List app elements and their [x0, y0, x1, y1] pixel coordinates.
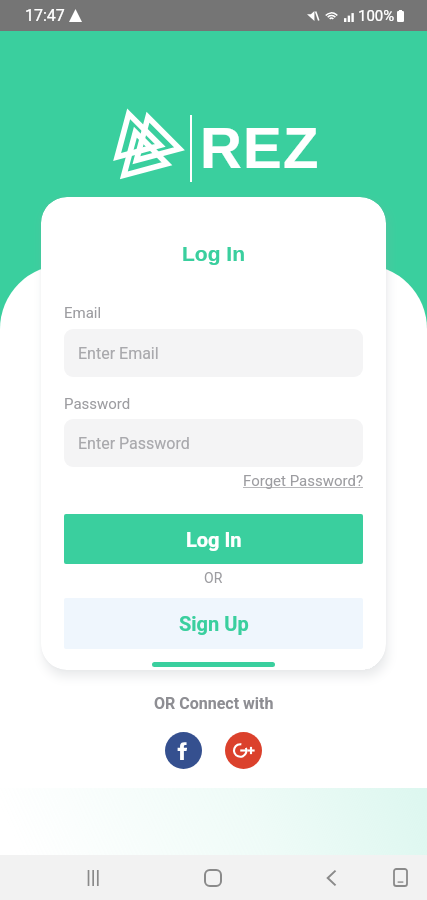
button[interactable]: Hide keyboard: [377, 855, 423, 900]
staticText: Forget Password?: [243, 472, 363, 490]
staticText: 17:47: [25, 6, 65, 25]
button[interactable]: Log In: [64, 514, 363, 564]
button[interactable]: Enter Password: [64, 419, 363, 467]
staticText: Password: [64, 395, 131, 413]
button[interactable]: Sign in with Facebook: [165, 732, 202, 769]
button[interactable]: Home: [189, 855, 236, 900]
staticText: OR: [204, 570, 223, 586]
staticText: REZ: [200, 115, 320, 180]
staticText: Enter Password: [78, 434, 190, 453]
button[interactable]: Sign in with Google Plus: [225, 732, 262, 769]
button[interactable]: Enter Email: [64, 329, 363, 377]
staticText: Email: [64, 304, 102, 322]
staticText: 100%: [358, 7, 395, 25]
button[interactable]: Forget Password?: [243, 472, 363, 490]
staticText: Enter Email: [78, 344, 159, 363]
staticText: Log In: [182, 242, 245, 265]
staticText: Log In: [186, 528, 242, 551]
button[interactable]: Back: [308, 855, 355, 900]
button[interactable]: Recent apps: [70, 855, 117, 900]
staticText: OR Connect with: [154, 694, 274, 713]
staticText: Sign Up: [179, 612, 249, 635]
button[interactable]: Sign Up: [64, 598, 363, 649]
